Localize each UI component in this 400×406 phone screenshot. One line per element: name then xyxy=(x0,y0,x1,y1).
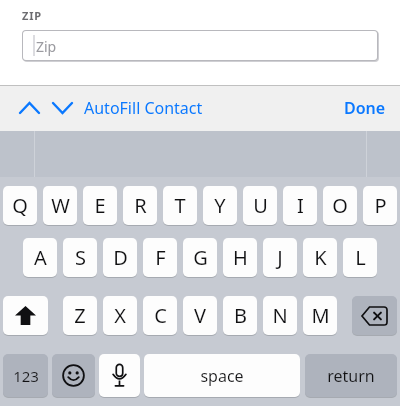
button[interactable]: W xyxy=(43,186,77,225)
button[interactable]: R xyxy=(123,186,157,225)
button[interactable]: Backspace xyxy=(352,296,397,335)
button[interactable]: 123 xyxy=(3,354,48,397)
staticText: Q xyxy=(12,192,28,219)
staticText: space xyxy=(200,365,244,387)
button[interactable]: E xyxy=(83,186,117,225)
staticText: ZIP xyxy=(22,8,42,23)
button[interactable]: space xyxy=(144,354,300,397)
button[interactable]: Emoji xyxy=(52,354,95,397)
button[interactable]: Dictation xyxy=(99,354,140,397)
staticText: return xyxy=(327,365,375,387)
button[interactable]: K xyxy=(303,238,337,277)
staticText: Zip xyxy=(36,37,57,56)
staticText: T xyxy=(174,192,186,219)
staticText: Y xyxy=(214,192,226,219)
staticText: Z xyxy=(74,302,86,329)
button[interactable]: U xyxy=(243,186,277,225)
button[interactable]: M xyxy=(303,296,337,335)
button[interactable]: P xyxy=(363,186,397,225)
button[interactable]: Done xyxy=(344,95,386,121)
staticText: W xyxy=(51,192,70,219)
button[interactable]: Next field xyxy=(46,95,78,121)
button[interactable]: N xyxy=(263,296,297,335)
button[interactable]: return xyxy=(305,354,397,397)
staticText: K xyxy=(314,244,327,271)
staticText: D xyxy=(113,244,128,271)
button[interactable]: L xyxy=(343,238,377,277)
button[interactable]: J xyxy=(263,238,297,277)
button[interactable]: A xyxy=(23,238,57,277)
button[interactable]: AutoFill Contact xyxy=(84,95,203,121)
staticText: 123 xyxy=(13,366,39,386)
staticText: P xyxy=(374,192,387,219)
staticText: O xyxy=(332,192,348,219)
staticText: E xyxy=(94,192,106,219)
button[interactable]: O xyxy=(323,186,357,225)
staticText: S xyxy=(75,244,86,271)
button[interactable]: V xyxy=(183,296,217,335)
button[interactable]: X xyxy=(103,296,137,335)
button[interactable]: Q xyxy=(3,186,37,225)
button[interactable]: C xyxy=(143,296,177,335)
staticText: U xyxy=(253,192,268,219)
button[interactable]: G xyxy=(183,238,217,277)
staticText: J xyxy=(277,244,283,271)
staticText: I xyxy=(297,192,304,219)
button[interactable]: B xyxy=(223,296,257,335)
button[interactable]: Previous field xyxy=(13,95,45,121)
staticText: N xyxy=(272,302,288,329)
button[interactable]: D xyxy=(103,238,137,277)
button[interactable]: Shift xyxy=(3,296,48,335)
button[interactable]: T xyxy=(163,186,197,225)
button[interactable]: H xyxy=(223,238,257,277)
staticText: B xyxy=(234,302,247,329)
button[interactable]: S xyxy=(63,238,97,277)
button[interactable]: F xyxy=(143,238,177,277)
staticText: A xyxy=(34,244,47,271)
staticText: H xyxy=(233,244,248,271)
staticText: R xyxy=(134,192,147,219)
staticText: C xyxy=(154,302,167,329)
staticText: L xyxy=(355,244,366,271)
staticText: G xyxy=(193,244,208,271)
staticText: Done xyxy=(344,97,386,119)
staticText: X xyxy=(114,302,126,329)
button[interactable]: Zip xyxy=(22,30,378,61)
button[interactable]: Y xyxy=(203,186,237,225)
staticText: V xyxy=(194,302,206,329)
staticText: F xyxy=(155,244,166,271)
button[interactable]: Z xyxy=(63,296,97,335)
staticText: M xyxy=(311,302,330,329)
button[interactable]: I xyxy=(283,186,317,225)
staticText: AutoFill Contact xyxy=(84,97,203,119)
